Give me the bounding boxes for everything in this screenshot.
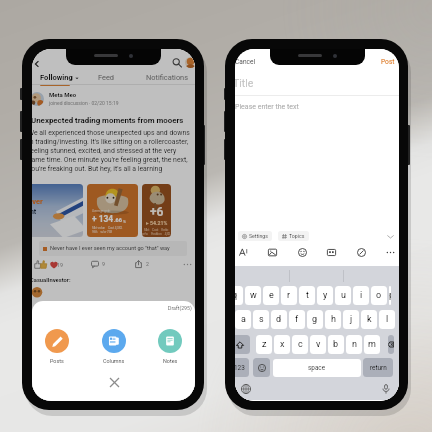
button[interactable]: z — [256, 335, 272, 354]
staticText: Following — [40, 73, 73, 82]
button[interactable]: w — [245, 286, 261, 305]
staticText: d — [276, 314, 282, 325]
staticText: z — [262, 339, 267, 350]
button[interactable]: u — [335, 286, 351, 305]
button[interactable]: l — [379, 310, 395, 329]
button[interactable]: Never have I ever seen my account go "th… — [39, 241, 187, 256]
button[interactable]: Notifications — [142, 73, 192, 85]
button[interactable]: r — [281, 286, 297, 305]
staticText: v — [316, 339, 321, 350]
button[interactable]: Notes — [158, 329, 182, 364]
button[interactable]: c — [292, 335, 308, 354]
button[interactable]: Share — [135, 260, 149, 268]
staticText: u — [341, 290, 346, 301]
button[interactable]: d — [271, 310, 287, 329]
staticText: t — [306, 290, 309, 301]
button[interactable]: Language — [239, 382, 252, 395]
button[interactable]: s — [253, 310, 269, 329]
staticText: CasualInvestor: — [32, 277, 71, 284]
staticText: p — [389, 290, 391, 301]
button[interactable]: n — [346, 335, 362, 354]
button[interactable]: Close — [104, 372, 124, 392]
staticText: Average gain — [92, 209, 111, 213]
staticText: 123 — [235, 364, 245, 372]
button[interactable]: t — [299, 286, 315, 305]
button[interactable]: Topics — [278, 231, 309, 241]
staticText: Meta Meo — [49, 91, 77, 98]
button[interactable]: g — [307, 310, 323, 329]
button[interactable]: o — [371, 286, 387, 305]
button[interactable]: q — [235, 286, 243, 305]
button[interactable]: More — [384, 246, 397, 259]
staticText: l — [386, 314, 389, 325]
button[interactable]: More — [182, 259, 192, 269]
staticText: account — [32, 208, 37, 216]
staticText: Notes — [163, 358, 178, 364]
staticText: f — [295, 314, 299, 325]
staticText: a — [241, 314, 246, 325]
button[interactable]: Link — [355, 246, 368, 259]
staticText: b — [333, 339, 339, 350]
button[interactable]: Feed — [92, 73, 120, 85]
button[interactable]: b — [328, 335, 344, 354]
button[interactable]: k — [361, 310, 377, 329]
staticText: 54.21% — [150, 220, 168, 226]
button[interactable]: Image — [266, 246, 279, 259]
button[interactable]: Text format — [237, 246, 250, 259]
button[interactable]: Emoji — [296, 246, 309, 259]
button[interactable]: Settings — [238, 231, 272, 241]
button[interactable]: Collapse — [385, 231, 395, 241]
button[interactable]: a — [235, 310, 251, 329]
staticText: % — [123, 219, 126, 224]
button[interactable]: Posts — [45, 329, 69, 364]
button[interactable]: Backspace — [388, 335, 394, 354]
button[interactable]: Post — [379, 56, 397, 68]
button[interactable]: Shift — [235, 335, 250, 354]
button[interactable]: Comments — [91, 260, 105, 268]
staticText: g — [312, 314, 318, 325]
staticText: j — [350, 314, 353, 325]
staticText: k — [367, 314, 372, 325]
button[interactable]: return — [363, 358, 393, 377]
button[interactable]: space — [273, 359, 361, 377]
staticText: m — [368, 339, 376, 350]
staticText: 2 — [146, 261, 149, 267]
button[interactable]: m — [364, 335, 380, 354]
button[interactable]: Columns — [102, 329, 126, 364]
button[interactable]: Reactions — [34, 260, 63, 269]
button[interactable]: y — [317, 286, 333, 305]
staticText: o — [376, 290, 382, 301]
staticText: r — [287, 290, 291, 301]
button[interactable]: Following — [40, 73, 79, 86]
button[interactable]: Emoji — [253, 358, 270, 377]
button[interactable]: i — [353, 286, 369, 305]
staticText: Title — [235, 77, 254, 89]
button[interactable]: e — [263, 286, 279, 305]
button[interactable]: x — [274, 335, 290, 354]
button[interactable]: h — [325, 310, 341, 329]
button[interactable]: Profile — [185, 57, 195, 68]
button[interactable]: p — [389, 286, 391, 305]
button[interactable]: v — [310, 335, 326, 354]
staticText: We all experienced those unexpected ups … — [32, 129, 191, 173]
staticText: Notifications — [146, 73, 189, 82]
staticText: Mkt value Cost 4,382 — [92, 226, 123, 230]
button[interactable]: Search — [170, 56, 183, 69]
staticText: y — [323, 290, 328, 301]
button[interactable]: ave I ever — [32, 184, 83, 237]
staticText: Mkt Cost Ratio — [144, 228, 169, 232]
staticText: Please enter the text — [235, 103, 299, 111]
button[interactable]: 123 — [235, 358, 249, 377]
button[interactable]: Average gain — [87, 184, 138, 237]
button[interactable]: +6 — [142, 184, 171, 237]
staticText: h — [331, 314, 336, 325]
button[interactable]: Dictate — [379, 382, 392, 395]
button[interactable]: Quote — [325, 246, 338, 259]
button[interactable]: j — [343, 310, 359, 329]
staticText: q — [235, 290, 238, 301]
button[interactable]: f — [289, 310, 305, 329]
button[interactable]: Cancel — [235, 56, 258, 68]
staticText: Unexpected trading moments from mooers — [32, 116, 194, 125]
staticText: .66 — [114, 217, 123, 224]
button[interactable]: Back — [32, 57, 43, 70]
